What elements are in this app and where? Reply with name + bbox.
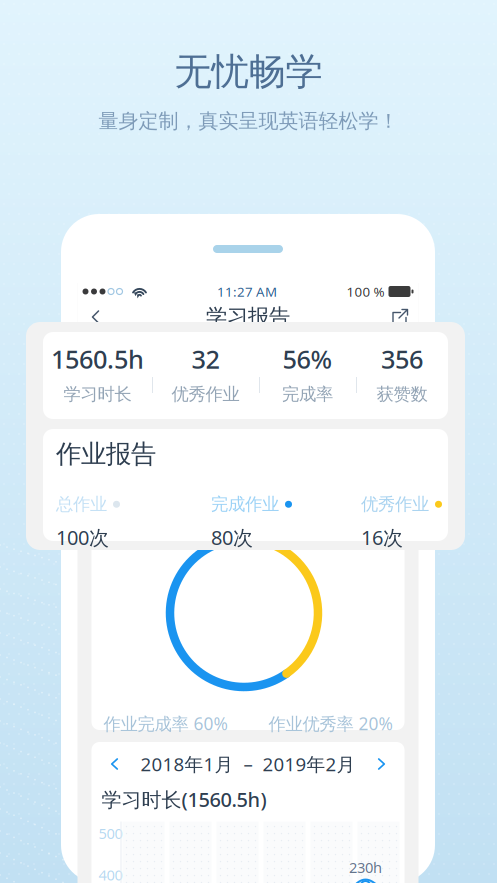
staticText: 100次 <box>56 524 109 550</box>
staticText: 1560.5h <box>51 342 144 376</box>
staticText: 学习报告 <box>206 304 290 330</box>
staticText: 作业优秀率 20% <box>268 712 392 735</box>
staticText: 量身定制，真实呈现英语轻松学！ <box>98 109 398 133</box>
staticText: 优秀作业 <box>361 494 429 515</box>
button[interactable]: Share <box>383 300 417 334</box>
staticText: 2018年1月 – 2019年2月 <box>140 752 355 776</box>
staticText: 学习时长(1560.5h) <box>101 786 266 813</box>
staticText: 获赞数 <box>376 384 427 405</box>
staticText: 80次 <box>211 524 253 550</box>
staticText: 总作业 <box>56 494 107 515</box>
staticText: 400 <box>98 865 122 883</box>
staticText: 16次 <box>361 524 403 550</box>
staticText: 356 <box>381 342 423 376</box>
staticText: 56% <box>282 342 332 376</box>
staticText: 无忧畅学 <box>174 49 322 95</box>
staticText: 500 <box>98 824 122 843</box>
staticText: 11:27 AM <box>217 283 277 300</box>
staticText: 完成作业 <box>211 494 279 515</box>
staticText: 优秀作业 <box>171 384 239 405</box>
staticText: 32 <box>191 342 219 376</box>
staticText: 作业报告 <box>56 438 156 470</box>
staticText: 完成率 <box>282 384 333 405</box>
staticText: 230h <box>349 858 382 877</box>
button[interactable]: Back <box>78 300 112 334</box>
staticText: 100 % <box>346 283 384 300</box>
button[interactable]: Next period <box>371 754 391 774</box>
staticText: 学习时长 <box>63 384 131 405</box>
staticText: 作业完成率 60% <box>103 712 227 735</box>
button[interactable]: Previous period <box>104 754 124 774</box>
